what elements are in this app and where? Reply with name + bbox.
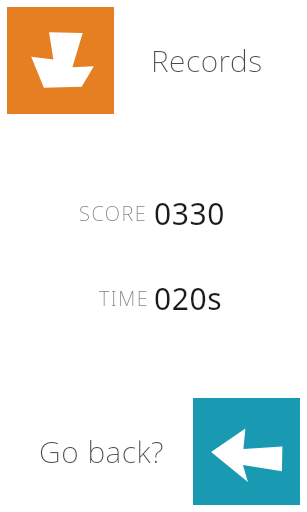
button[interactable]: TIME [99, 285, 150, 312]
button[interactable]: SCORE [79, 200, 148, 227]
button[interactable]: Go back? [39, 431, 165, 472]
button[interactable]: Records [7, 7, 114, 114]
staticText: 0330 [154, 193, 226, 229]
button[interactable]: Go back [193, 398, 300, 505]
staticText: 020s [154, 278, 223, 314]
staticText: Records [151, 40, 263, 81]
